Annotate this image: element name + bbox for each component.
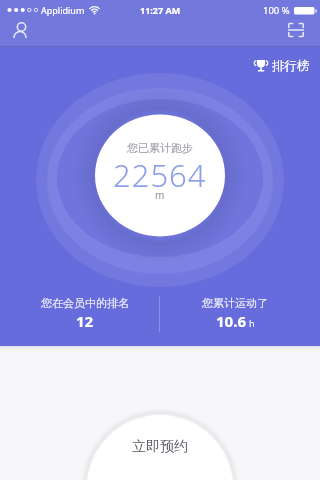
button[interactable] bbox=[8, 18, 32, 42]
staticText: 立即预约 bbox=[132, 438, 188, 456]
staticText: 排行榜 bbox=[272, 58, 310, 74]
staticText: 您已累计跑步 bbox=[127, 141, 193, 155]
button[interactable]: 您累计运动了 bbox=[160, 296, 310, 340]
button[interactable]: 您在会员中的排名 bbox=[10, 296, 159, 340]
button[interactable]: 排行榜 bbox=[254, 58, 310, 74]
button[interactable]: 立即预约 bbox=[82, 410, 238, 480]
staticText: 22564 bbox=[113, 154, 207, 196]
staticText: 11:27 AM bbox=[140, 4, 181, 16]
staticText: 您在会员中的排名 bbox=[41, 296, 129, 310]
staticText: Applidium bbox=[41, 4, 85, 16]
staticText: 12 bbox=[76, 311, 94, 331]
staticText: 10.6 bbox=[216, 311, 246, 331]
staticText: m bbox=[155, 188, 165, 202]
staticText: 100 % bbox=[263, 4, 290, 17]
staticText: 您累计运动了 bbox=[202, 296, 268, 310]
button[interactable] bbox=[284, 18, 308, 42]
staticText: h bbox=[249, 317, 255, 329]
